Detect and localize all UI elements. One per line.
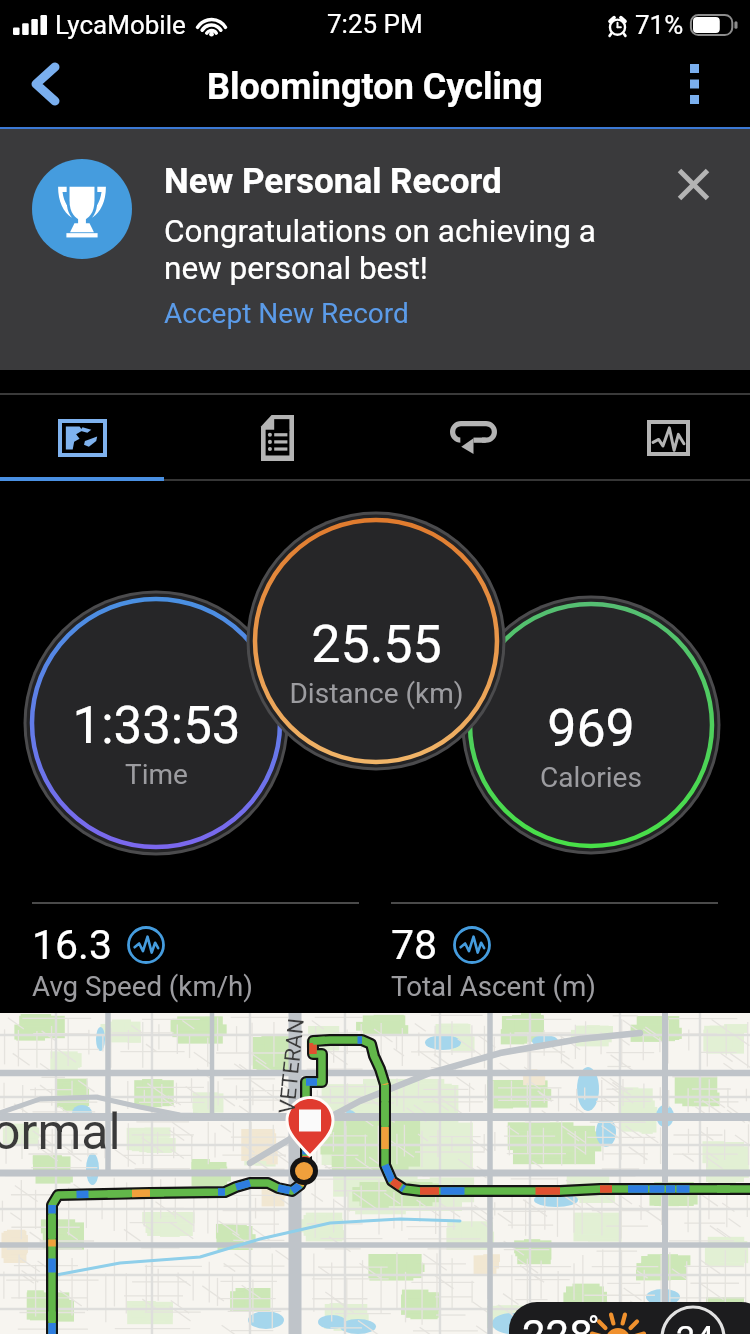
button[interactable]: Back [13, 55, 77, 119]
staticText: ormal [0, 1103, 121, 1162]
staticText: 78 [391, 921, 438, 969]
staticText: Distance (km) [289, 677, 464, 710]
button[interactable]: Route map [0, 1013, 750, 1334]
button[interactable]: Weather [509, 1302, 750, 1334]
button[interactable]: 969 [441, 698, 741, 794]
staticText: 24 [676, 1318, 715, 1334]
staticText: 228 [522, 1311, 593, 1334]
button[interactable]: Tab [0, 394, 179, 481]
button[interactable]: Tab [571, 394, 750, 481]
button[interactable]: Accept New Record [164, 297, 409, 330]
button[interactable]: 1:33:53 [6, 696, 306, 791]
button[interactable]: Dismiss [663, 154, 723, 214]
staticText: 1:33:53 [72, 696, 241, 756]
staticText: VETERAN [274, 1017, 310, 1115]
button[interactable]: Tab [180, 394, 374, 481]
staticText: 7:25 PM [327, 9, 423, 39]
staticText: Calories [540, 761, 642, 794]
staticText: Time [125, 758, 188, 791]
staticText: Accept New Record [164, 297, 409, 330]
staticText: Avg Speed (km/h) [32, 970, 253, 1002]
staticText: Total Ascent (m) [391, 970, 596, 1002]
button[interactable]: More options [666, 59, 722, 115]
button[interactable]: Tab [376, 394, 570, 481]
button[interactable]: 78 [391, 902, 718, 1013]
staticText: Congratulations on achieving a new perso… [164, 213, 596, 287]
staticText: LycaMobile [55, 10, 186, 40]
staticText: 16.3 [32, 921, 112, 969]
staticText: Bloomington Cycling [207, 66, 543, 108]
button[interactable]: 25.55 [226, 614, 526, 710]
button[interactable]: 16.3 [32, 902, 359, 1013]
staticText: ° [588, 1309, 600, 1334]
staticText: 25.55 [311, 614, 442, 675]
staticText: New Personal Record [164, 161, 502, 202]
button[interactable]: Trophy [32, 159, 132, 259]
staticText: 71% [635, 10, 684, 40]
staticText: 969 [547, 698, 635, 759]
